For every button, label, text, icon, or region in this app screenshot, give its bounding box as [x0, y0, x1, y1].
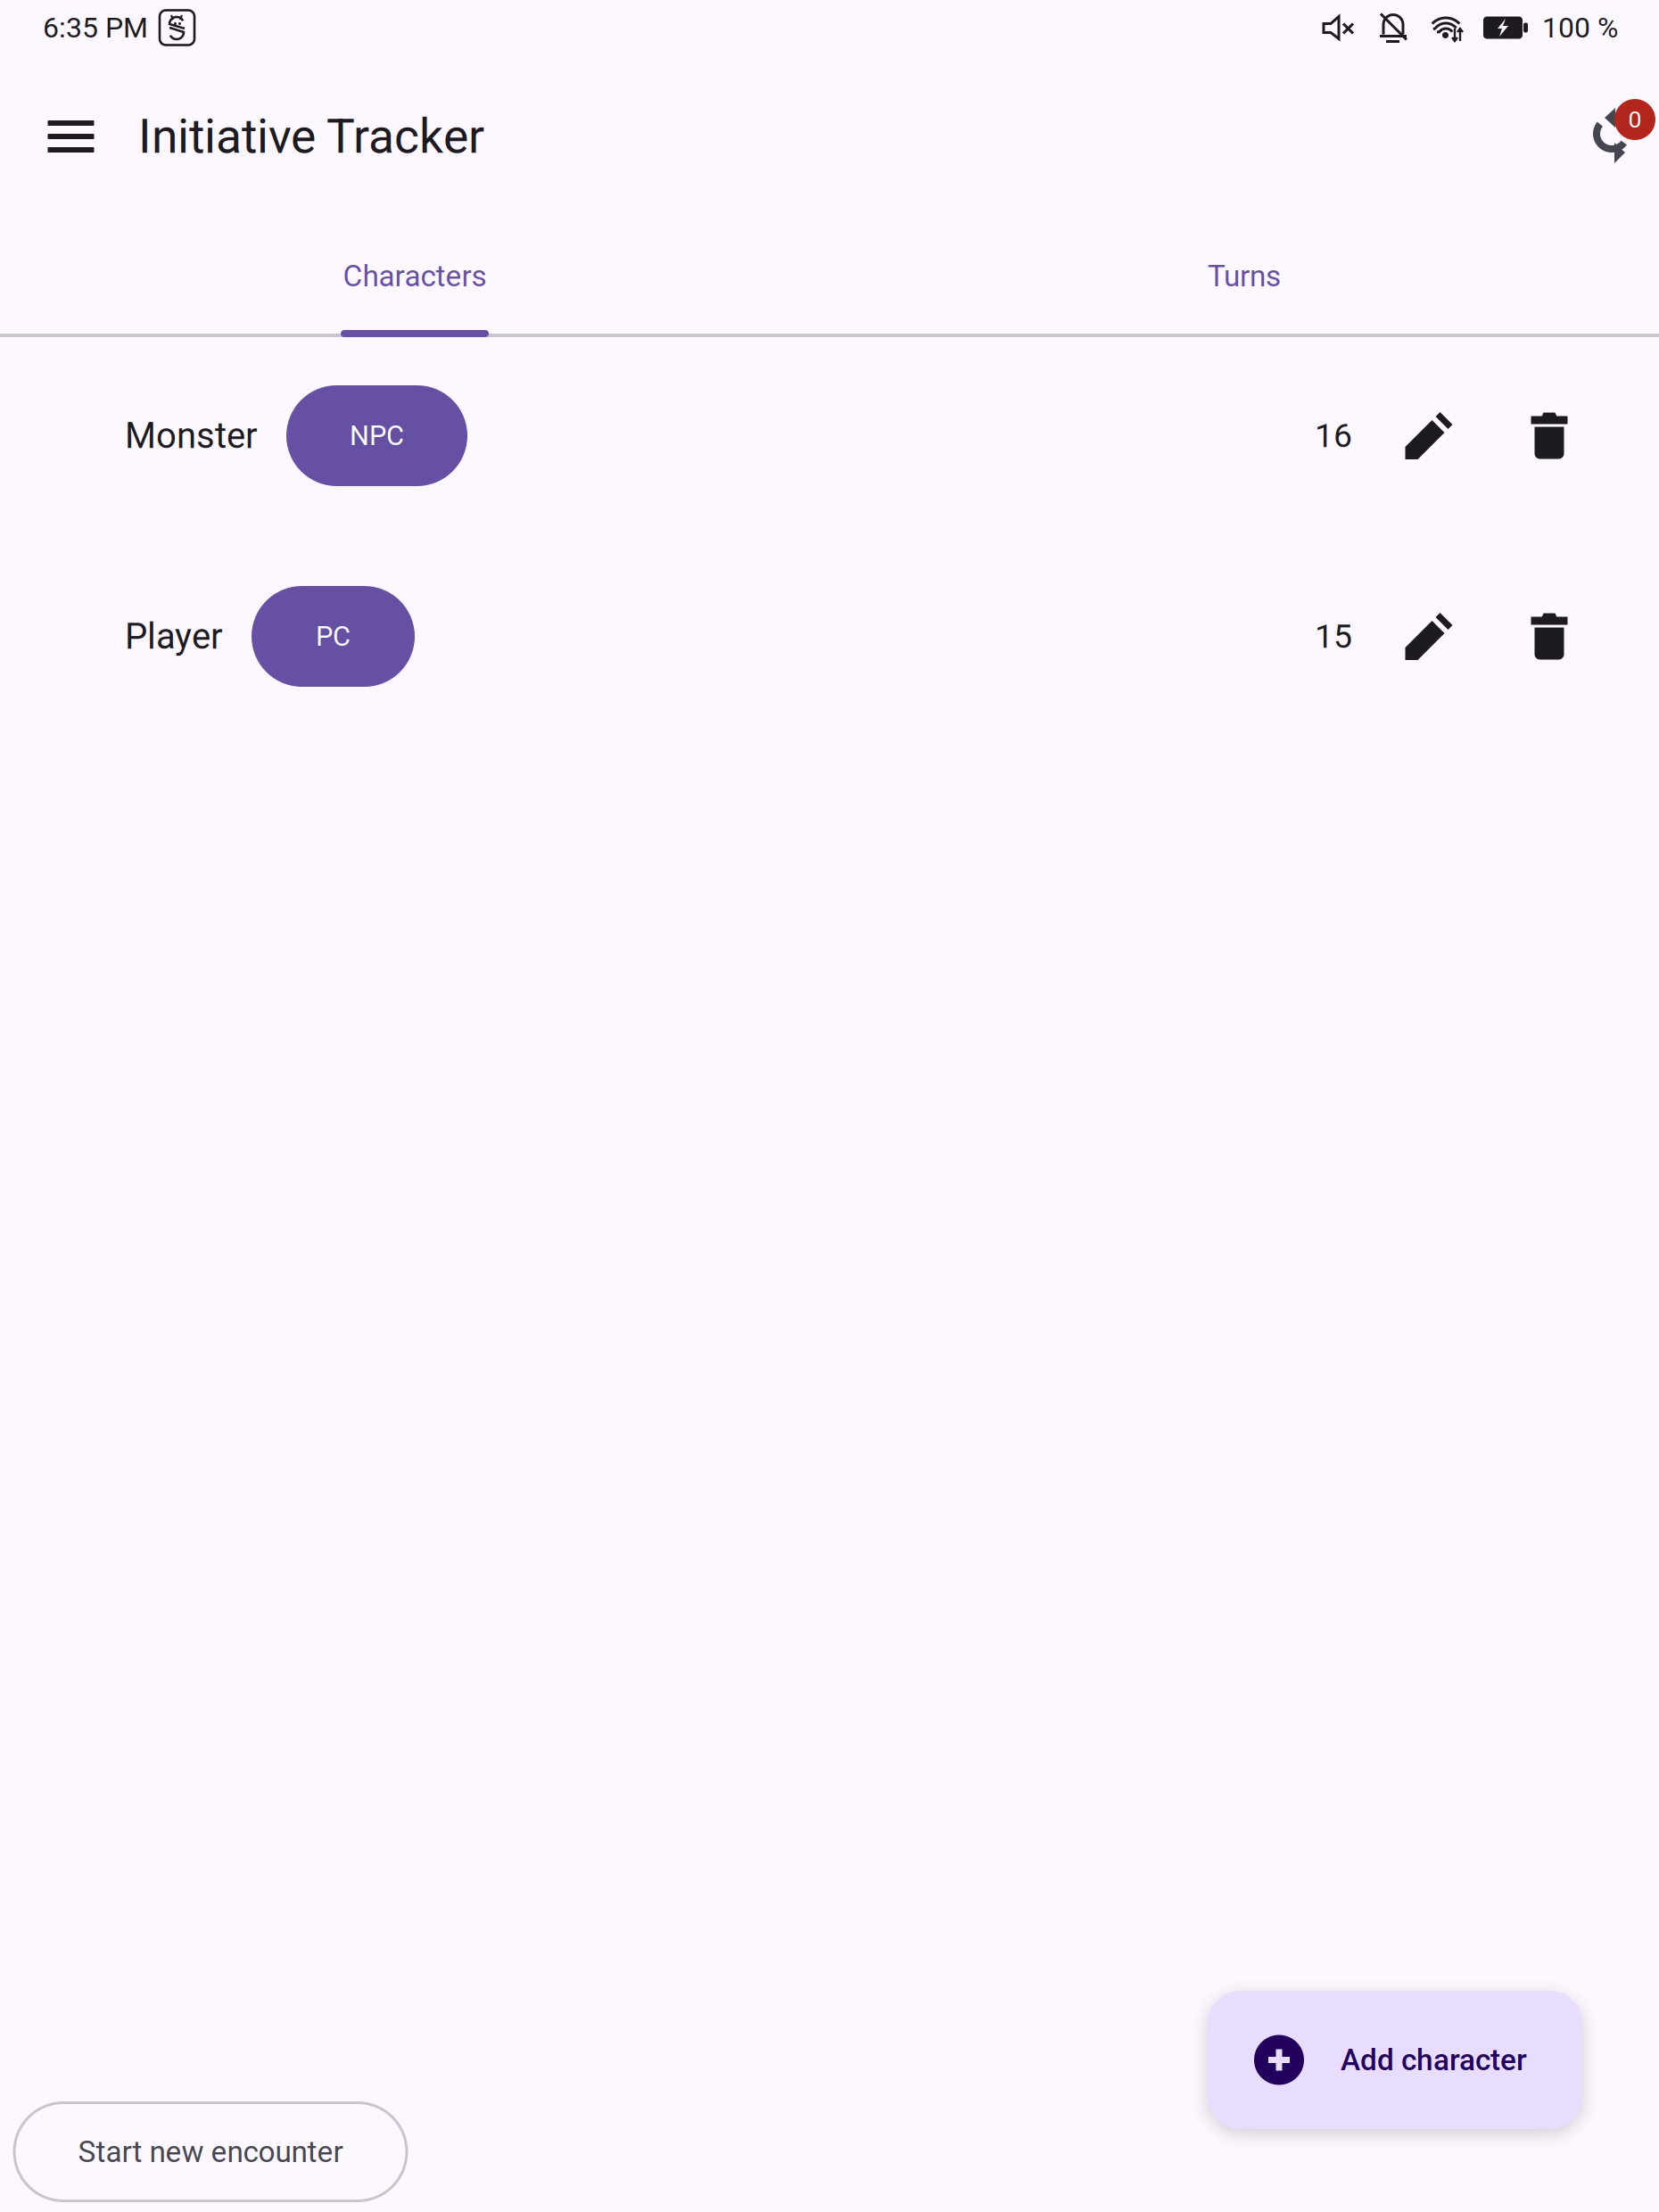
staticText: Turns [1208, 259, 1281, 294]
staticText: 16 [1315, 416, 1352, 455]
staticText: Monster [125, 415, 258, 457]
button[interactable]: Edit Monster [1382, 382, 1453, 489]
staticText: Add character [1341, 2043, 1527, 2077]
staticText: Characters [343, 259, 487, 294]
button[interactable]: Add character [1208, 1991, 1582, 2129]
staticText: Player [125, 616, 223, 657]
button[interactable]: Open navigation menu [24, 85, 118, 188]
button[interactable]: Start new encounter [14, 2103, 407, 2201]
button[interactable]: Delete Player [1514, 583, 1585, 690]
button[interactable]: Turns [829, 234, 1659, 337]
button[interactable]: Characters [0, 234, 829, 337]
button[interactable]: Delete Monster [1514, 382, 1585, 489]
button[interactable]: Monster [125, 335, 467, 536]
button[interactable]: Player [125, 536, 415, 737]
staticText: NPC [350, 420, 404, 452]
staticText: Initiative Tracker [138, 109, 484, 164]
staticText: 15 [1315, 617, 1352, 656]
staticText: 0 [1628, 106, 1642, 134]
button[interactable]: Edit Player [1382, 583, 1453, 690]
button[interactable]: Reorder initiative [1586, 78, 1659, 194]
staticText: Start new encounter [78, 2134, 343, 2169]
staticText: 100 % [1542, 11, 1618, 44]
staticText: 6:35 PM [43, 11, 148, 44]
staticText: PC [316, 620, 351, 652]
